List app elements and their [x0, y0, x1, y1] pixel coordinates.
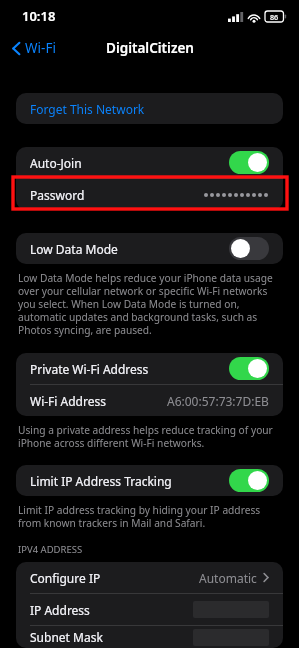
button[interactable]: Forget This Network [16, 93, 283, 124]
staticText: Private Wi-Fi Address [30, 361, 149, 377]
staticText: Wi-Fi Address [30, 393, 106, 409]
button[interactable]: Configure IP [16, 562, 283, 593]
button[interactable]: Wi-Fi Address [16, 385, 283, 416]
staticText: Forget This Network [30, 101, 145, 117]
button[interactable]: Subnet Mask [16, 626, 283, 648]
button[interactable]: IP Address [16, 594, 283, 625]
button[interactable]: Limit IP Address Tracking [16, 465, 283, 496]
button[interactable]: Low Data Mode [229, 237, 269, 260]
staticText: Low Data Mode helps reduce your iPhone d… [18, 271, 283, 337]
staticText: Auto-Join [30, 155, 82, 171]
staticText: Password [30, 187, 85, 203]
button[interactable]: Auto-Join [229, 151, 269, 174]
staticText: Limit IP address tracking by hiding your… [18, 503, 283, 530]
button[interactable]: Limit IP Address Tracking [229, 469, 269, 492]
staticText: 10:18 [22, 7, 56, 25]
staticText: IPV4 ADDRESS [18, 543, 83, 556]
button[interactable]: Private Wi-Fi Address [229, 357, 269, 380]
staticText: IP Address [30, 602, 90, 618]
staticText: Wi-Fi [25, 39, 56, 57]
button[interactable]: Low Data Mode [16, 233, 283, 264]
staticText: 86 [270, 12, 279, 22]
staticText: DigitalCitizen [106, 39, 194, 57]
staticText: Using a private address helps reduce tra… [18, 423, 283, 450]
staticText: Configure IP [30, 570, 101, 586]
staticText: Limit IP Address Tracking [30, 473, 172, 489]
staticText: Subnet Mask [30, 629, 103, 645]
staticText: A6:00:57:73:7D:EB [167, 393, 269, 409]
staticText: Low Data Mode [30, 241, 118, 257]
button[interactable]: Private Wi-Fi Address [16, 353, 283, 384]
button[interactable]: Password [16, 179, 283, 210]
button[interactable]: Wi-Fi [9, 34, 59, 62]
staticText: Automatic [199, 570, 257, 586]
button[interactable]: Auto-Join [16, 147, 283, 178]
